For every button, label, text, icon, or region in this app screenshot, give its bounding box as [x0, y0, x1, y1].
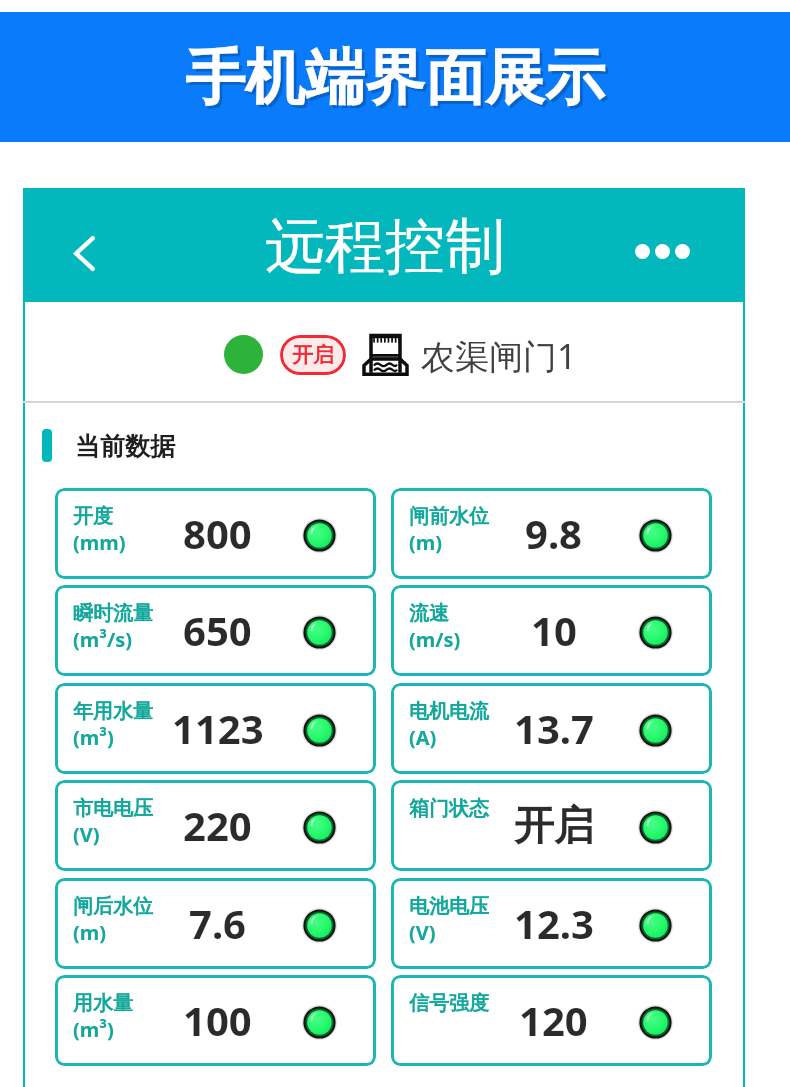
staticText: 100 — [183, 993, 252, 1047]
button[interactable]: 电机电流 — [391, 683, 712, 774]
button[interactable]: Back — [56, 225, 112, 281]
staticText: (m) — [409, 529, 443, 556]
staticText: (A) — [409, 724, 437, 751]
button[interactable]: 电池电压 — [391, 878, 712, 969]
staticText: (m³/s) — [73, 626, 132, 653]
staticText: 1123 — [172, 701, 264, 755]
button[interactable]: 瞬时流量 — [55, 585, 376, 676]
staticText: 农渠闸门1 — [421, 333, 577, 379]
staticText: 13.7 — [514, 701, 594, 755]
staticText: (m³) — [73, 724, 114, 751]
staticText: 电机电流 — [409, 699, 489, 724]
staticText: 箱门状态 — [409, 796, 489, 821]
button[interactable]: More options — [624, 227, 700, 275]
button[interactable]: 闸前水位 — [391, 488, 712, 579]
staticText: (mm) — [73, 529, 126, 556]
staticText: 开启 — [514, 800, 594, 850]
staticText: 220 — [183, 798, 252, 852]
button[interactable]: 闸后水位 — [55, 878, 376, 969]
staticText: 远程控制 — [265, 209, 505, 285]
staticText: 开度 — [73, 504, 113, 529]
staticText: 手机端界面展示 — [185, 40, 605, 116]
staticText: 10 — [531, 603, 577, 657]
staticText: (V) — [73, 821, 100, 848]
staticText: 信号强度 — [409, 991, 489, 1016]
staticText: 年用水量 — [73, 699, 153, 724]
staticText: 120 — [519, 993, 588, 1047]
staticText: 闸前水位 — [409, 504, 489, 529]
button[interactable]: 箱门状态 — [391, 780, 712, 871]
staticText: (m/s) — [409, 626, 461, 653]
button[interactable]: 用水量 — [55, 975, 376, 1066]
staticText: 650 — [183, 603, 252, 657]
staticText: 流速 — [409, 601, 449, 626]
button[interactable]: 流速 — [391, 585, 712, 676]
button[interactable]: 市电电压 — [55, 780, 376, 871]
staticText: (m) — [73, 919, 107, 946]
staticText: 800 — [183, 506, 252, 560]
staticText: 闸后水位 — [73, 894, 153, 919]
staticText: 用水量 — [73, 991, 133, 1016]
staticText: (m³) — [73, 1016, 114, 1043]
staticText: (V) — [409, 919, 436, 946]
staticText: 市电电压 — [73, 796, 153, 821]
staticText: 瞬时流量 — [73, 601, 153, 626]
staticText: 12.3 — [514, 896, 594, 950]
staticText: 9.8 — [525, 506, 582, 560]
staticText: 开启 — [292, 342, 334, 368]
button[interactable]: 年用水量 — [55, 683, 376, 774]
staticText: 手机端界面展示 — [188, 43, 608, 119]
staticText: 7.6 — [189, 896, 246, 950]
button[interactable]: 开度 — [55, 488, 376, 579]
staticText: 当前数据 — [75, 431, 175, 462]
button[interactable]: 信号强度 — [391, 975, 712, 1066]
staticText: 电池电压 — [409, 894, 489, 919]
